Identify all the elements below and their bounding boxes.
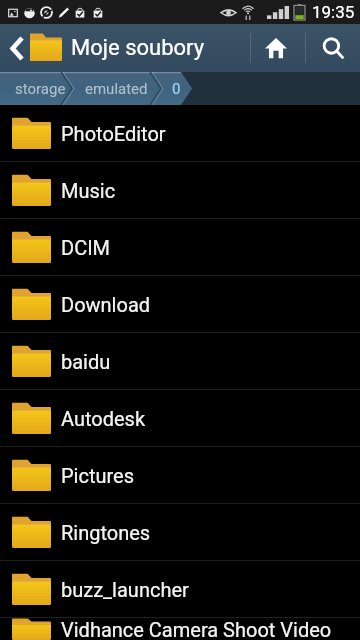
button[interactable]: DCIM	[0, 219, 360, 275]
staticText: emulated	[85, 80, 148, 98]
button[interactable]: Music	[0, 162, 360, 218]
staticText: baidu	[61, 350, 111, 373]
staticText: Moje soubory	[71, 35, 205, 61]
button[interactable]: PhotoEditor	[0, 105, 360, 161]
staticText: Vidhance Camera Shoot Video	[61, 618, 332, 640]
button[interactable]: Vidhance Camera Shoot Video	[0, 618, 360, 640]
button[interactable]: Pictures	[0, 447, 360, 503]
staticText: DCIM	[61, 236, 111, 259]
staticText: Pictures	[61, 464, 135, 487]
button[interactable]: Ringtones	[0, 504, 360, 560]
staticText: 19:35	[312, 2, 355, 22]
staticText: Music	[61, 179, 116, 202]
staticText: Autodesk	[61, 407, 146, 430]
button[interactable]: buzz_launcher	[0, 561, 360, 617]
button[interactable]: Search	[306, 24, 360, 72]
staticText: Download	[61, 293, 151, 316]
button[interactable]: Home	[251, 24, 305, 72]
button[interactable]: baidu	[0, 333, 360, 389]
staticText: Ringtones	[61, 521, 151, 544]
button[interactable]: Download	[0, 276, 360, 332]
button[interactable]: Autodesk	[0, 390, 360, 446]
staticText: buzz_launcher	[61, 578, 189, 601]
staticText: storage	[15, 80, 66, 98]
button[interactable]: Moje soubory	[0, 24, 250, 72]
staticText: 0	[172, 80, 181, 98]
staticText: PhotoEditor	[61, 122, 166, 145]
